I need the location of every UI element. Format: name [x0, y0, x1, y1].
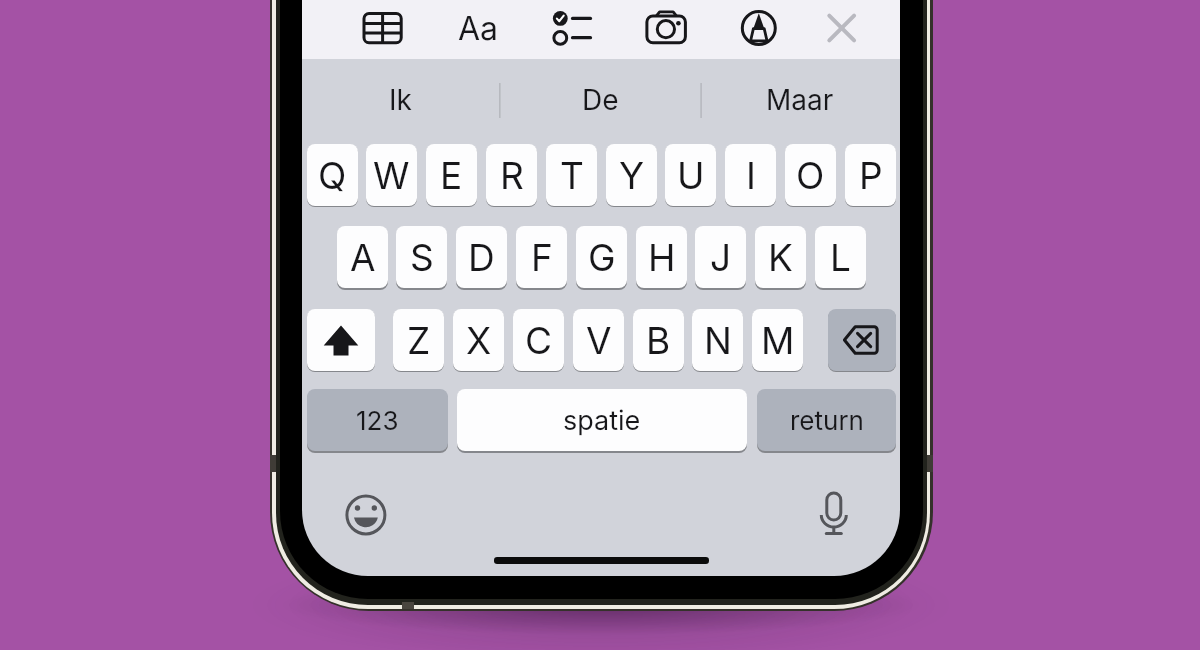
button[interactable] [810, 491, 858, 539]
button[interactable]: D [456, 226, 507, 288]
staticText: Z [407, 318, 431, 363]
button[interactable]: Aa [454, 5, 502, 51]
staticText: W [373, 153, 410, 198]
button[interactable] [643, 9, 689, 47]
button[interactable] [342, 491, 390, 539]
staticText: J [710, 235, 732, 280]
button[interactable]: V [573, 309, 624, 371]
staticText: G [588, 235, 616, 280]
staticText: Y [619, 153, 645, 198]
staticText: return [790, 405, 864, 436]
button[interactable]: L [815, 226, 866, 288]
button[interactable]: E [426, 144, 477, 206]
staticText: K [768, 235, 793, 280]
staticText: M [761, 318, 795, 363]
button[interactable]: O [785, 144, 836, 206]
button[interactable]: De [526, 70, 674, 130]
button[interactable]: G [576, 226, 627, 288]
button[interactable] [828, 309, 896, 371]
staticText: A [350, 235, 376, 280]
button[interactable]: I [725, 144, 776, 206]
staticText: R [500, 153, 524, 198]
button[interactable]: S [396, 226, 447, 288]
button[interactable]: J [695, 226, 746, 288]
button[interactable]: P [845, 144, 896, 206]
staticText: De [582, 83, 619, 117]
button[interactable] [360, 9, 405, 47]
staticText: D [468, 235, 495, 280]
button[interactable]: Ik [326, 70, 474, 130]
button[interactable]: K [755, 226, 806, 288]
button[interactable]: C [513, 309, 564, 371]
staticText: T [560, 153, 584, 198]
staticText: P [859, 153, 883, 198]
staticText: B [646, 318, 671, 363]
button[interactable] [738, 7, 780, 49]
button[interactable] [548, 9, 596, 47]
staticText: spatie [563, 404, 641, 437]
button[interactable]: X [453, 309, 504, 371]
staticText: E [440, 153, 463, 198]
staticText: 123 [356, 405, 399, 436]
button[interactable]: spatie [457, 389, 747, 451]
staticText: L [830, 235, 851, 280]
button[interactable]: Y [606, 144, 657, 206]
button[interactable]: N [692, 309, 743, 371]
button[interactable]: Maar [726, 70, 874, 130]
staticText: V [586, 318, 612, 363]
button[interactable] [307, 309, 375, 371]
button[interactable]: A [337, 226, 388, 288]
staticText: Maar [766, 83, 834, 117]
button[interactable]: U [665, 144, 716, 206]
staticText: Q [318, 153, 347, 198]
staticText: X [466, 318, 492, 363]
staticText: Aa [458, 9, 499, 48]
staticText: I [746, 153, 756, 198]
staticText: Ik [389, 83, 412, 117]
button[interactable]: R [486, 144, 537, 206]
button[interactable]: Q [307, 144, 358, 206]
button[interactable]: H [636, 226, 687, 288]
button[interactable]: W [366, 144, 417, 206]
button[interactable]: 123 [307, 389, 448, 451]
button[interactable]: B [633, 309, 684, 371]
staticText: F [531, 235, 553, 280]
button[interactable]: T [546, 144, 597, 206]
button[interactable] [821, 7, 863, 49]
staticText: C [525, 318, 553, 363]
button[interactable]: return [757, 389, 896, 451]
button[interactable]: Z [393, 309, 444, 371]
staticText: N [704, 318, 732, 363]
staticText: H [648, 235, 676, 280]
staticText: O [796, 153, 825, 198]
button[interactable]: F [516, 226, 567, 288]
button[interactable]: M [752, 309, 803, 371]
staticText: U [677, 153, 705, 198]
staticText: S [410, 235, 434, 280]
